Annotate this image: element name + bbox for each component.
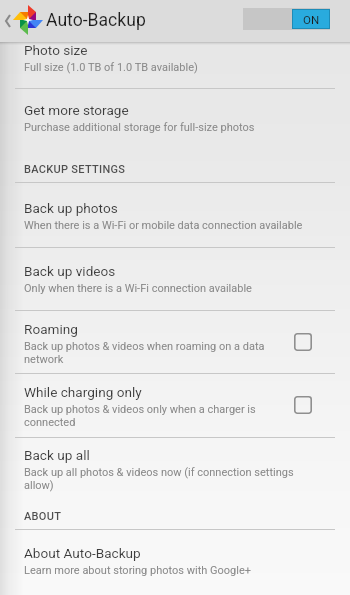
- staticText: Back up photos & videos when roaming on …: [24, 340, 270, 366]
- button[interactable]: Get more storage: [0, 89, 350, 150]
- staticText: Learn more about storing photos with Goo…: [24, 564, 251, 577]
- staticText: Roaming: [24, 321, 78, 337]
- staticText: About Auto-Backup: [24, 545, 141, 561]
- staticText: Auto-Backup: [46, 10, 146, 31]
- button[interactable]: While charging only: [0, 374, 350, 437]
- staticText: Purchase additional storage for full-siz…: [24, 121, 255, 134]
- button[interactable]: Navigate up: [0, 0, 16, 42]
- staticText: Get more storage: [24, 102, 129, 118]
- staticText: Photo size: [24, 42, 88, 58]
- staticText: Back up videos: [24, 263, 116, 279]
- staticText: While charging only: [24, 384, 142, 400]
- button[interactable]: Roaming: [0, 311, 350, 373]
- staticText: Back up all photos & videos now (if conn…: [24, 466, 312, 492]
- button[interactable]: About Auto-Backup: [0, 530, 350, 590]
- button[interactable]: Auto-Backup on: [243, 8, 330, 30]
- staticText: Only when there is a Wi-Fi connection av…: [24, 282, 252, 295]
- staticText: ON: [303, 13, 320, 26]
- button[interactable]: Back up photos: [0, 183, 350, 247]
- staticText: BACKUP SETTINGS: [24, 163, 126, 176]
- button[interactable]: Photo size: [0, 42, 350, 88]
- staticText: Back up photos: [24, 200, 118, 216]
- staticText: When there is a Wi-Fi or mobile data con…: [24, 219, 303, 232]
- button[interactable]: Back up videos: [0, 248, 350, 310]
- staticText: Back up photos & videos only when a char…: [24, 403, 270, 429]
- staticText: ABOUT: [24, 510, 62, 523]
- button[interactable]: Back up all: [0, 438, 350, 498]
- staticText: Back up all: [24, 447, 90, 463]
- staticText: Full size (1.0 TB of 1.0 TB available): [24, 61, 198, 74]
